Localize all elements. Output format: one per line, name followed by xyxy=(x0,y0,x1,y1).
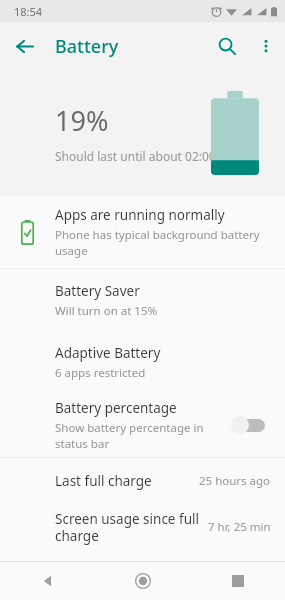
button[interactable]: Back xyxy=(0,562,95,600)
staticText: 19% xyxy=(55,102,109,139)
staticText: 6 apps restricted xyxy=(55,365,146,381)
staticText: Last full charge xyxy=(55,472,191,490)
staticText: 7 hr, 25 min xyxy=(208,519,271,535)
staticText: Will turn on at 15% xyxy=(55,303,158,319)
staticText: Apps are running normally xyxy=(55,206,225,224)
staticText: Adaptive Battery xyxy=(55,344,161,362)
button[interactable]: Adaptive Battery xyxy=(0,331,285,393)
button[interactable]: Home xyxy=(95,562,190,600)
button[interactable]: Back xyxy=(6,28,42,64)
button[interactable]: Battery Saver xyxy=(0,269,285,331)
staticText: Show battery percentage in status bar xyxy=(55,420,223,451)
staticText: 18:54 xyxy=(14,4,43,19)
button[interactable]: Battery percentage xyxy=(0,393,285,457)
button[interactable]: Apps are running normally xyxy=(0,196,285,268)
staticText: Phone has typical background battery usa… xyxy=(55,227,269,258)
button[interactable]: Battery percentage toggle xyxy=(231,410,271,440)
button[interactable]: Search xyxy=(207,26,247,66)
button[interactable]: Last full charge xyxy=(0,458,285,504)
staticText: Battery xyxy=(55,34,119,59)
staticText: Should last until about 02:00 xyxy=(55,148,216,164)
button[interactable]: More options xyxy=(247,27,285,65)
staticText: Battery Saver xyxy=(55,282,140,300)
button[interactable]: Recent apps xyxy=(190,562,285,600)
staticText: 25 hours ago xyxy=(199,473,271,489)
staticText: Battery percentage xyxy=(55,399,177,417)
staticText: Screen usage since full charge xyxy=(55,510,200,545)
button[interactable]: Screen usage since full charge xyxy=(0,504,285,550)
